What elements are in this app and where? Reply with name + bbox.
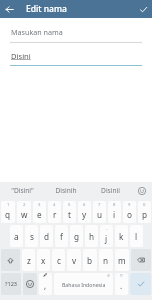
staticText: s: [30, 231, 34, 242]
button[interactable]: -: [100, 225, 113, 247]
button[interactable]: Emoji: [132, 182, 152, 199]
button[interactable]: !?: [115, 273, 128, 295]
staticText: g: [74, 231, 80, 242]
button[interactable]: Masukan nama: [0, 24, 152, 43]
staticText: 3: [38, 202, 41, 208]
button[interactable]: 9: [123, 201, 136, 223]
staticText: Disini: [11, 51, 31, 61]
staticText: o: [127, 209, 132, 220]
staticText: 0: [143, 202, 146, 208]
button[interactable]: k: [115, 225, 128, 247]
button[interactable]: Back: [0, 0, 18, 18]
staticText: 8: [113, 202, 116, 208]
staticText: z: [27, 255, 31, 266]
staticText: u: [97, 209, 103, 220]
staticText: l: [135, 231, 138, 242]
button[interactable]: v: [67, 249, 81, 271]
button[interactable]: n: [99, 249, 113, 271]
button[interactable]: f: [55, 225, 68, 247]
button[interactable]: z: [22, 249, 35, 271]
button[interactable]: 8: [108, 201, 121, 223]
button[interactable]: 4: [48, 201, 61, 223]
staticText: ?123: [5, 280, 18, 288]
staticText: "Disini": [11, 186, 34, 195]
button[interactable]: 7: [93, 201, 106, 223]
staticText: k: [119, 231, 124, 242]
staticText: 1: [7, 202, 10, 208]
staticText: 9: [128, 202, 131, 208]
staticText: 6: [83, 202, 86, 208]
button[interactable]: s: [25, 225, 38, 247]
staticText: 2: [23, 202, 26, 208]
staticText: w: [21, 209, 28, 220]
staticText: d: [44, 231, 50, 242]
staticText: Disinih: [55, 186, 77, 195]
staticText: q: [5, 209, 11, 220]
button[interactable]: Disinii: [88, 182, 132, 199]
button[interactable]: ?123: [1, 273, 21, 295]
button[interactable]: 6: [78, 201, 91, 223]
staticText: i: [113, 209, 116, 220]
staticText: e: [37, 209, 42, 220]
button[interactable]: Shift: [1, 249, 20, 271]
button[interactable]: 🎤: [39, 273, 52, 295]
staticText: v: [72, 255, 77, 266]
staticText: Masukan nama: [11, 27, 63, 37]
button[interactable]: Bahasa Indonesia: [54, 273, 113, 295]
staticText: t: [68, 209, 71, 220]
button[interactable]: x: [37, 249, 50, 271]
staticText: c: [57, 255, 61, 266]
button[interactable]: "Disini": [0, 182, 44, 199]
staticText: a: [14, 231, 19, 242]
staticText: -: [106, 226, 108, 232]
button[interactable]: Enter: [130, 273, 151, 295]
button[interactable]: Save: [134, 0, 152, 18]
button[interactable]: h: [85, 225, 98, 247]
staticText: 4: [53, 202, 56, 208]
staticText: b: [87, 255, 93, 266]
button[interactable]: l: [130, 225, 143, 247]
staticText: Disinii: [101, 186, 120, 195]
staticText: r: [53, 209, 57, 220]
button[interactable]: m: [115, 249, 129, 271]
staticText: 5: [68, 202, 71, 208]
staticText: x: [41, 255, 46, 266]
button[interactable]: a: [10, 225, 23, 247]
button[interactable]: 1: [1, 201, 15, 223]
button[interactable]: Emoji keyboard: [23, 273, 37, 295]
button[interactable]: 0: [138, 201, 151, 223]
button[interactable]: Disinih: [44, 182, 88, 199]
staticText: n: [103, 255, 109, 266]
button[interactable]: 2: [17, 201, 31, 223]
staticText: p: [142, 209, 148, 220]
staticText: 7: [98, 202, 101, 208]
button[interactable]: b: [83, 249, 97, 271]
staticText: m: [118, 255, 126, 266]
staticText: f: [60, 231, 63, 242]
button[interactable]: d: [40, 225, 53, 247]
button[interactable]: g: [70, 225, 83, 247]
staticText: j: [105, 233, 108, 244]
button[interactable]: Backspace: [131, 249, 151, 271]
staticText: Edit nama: [26, 3, 67, 15]
button[interactable]: c: [52, 249, 65, 271]
staticText: ,: [44, 280, 47, 291]
staticText: !?: [120, 273, 123, 278]
button[interactable]: Disini: [0, 51, 152, 66]
staticText: h: [89, 231, 95, 242]
staticText: 🎤: [43, 273, 48, 277]
button[interactable]: 5: [63, 201, 76, 223]
staticText: y: [82, 209, 87, 220]
staticText: Bahasa Indonesia: [62, 281, 106, 288]
button[interactable]: 3: [33, 201, 46, 223]
staticText: .: [120, 280, 123, 291]
